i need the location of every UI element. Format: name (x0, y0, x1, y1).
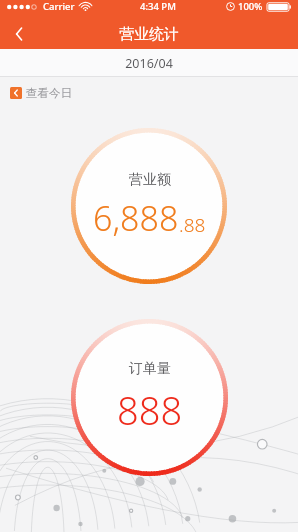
staticText: .88 (179, 212, 206, 238)
staticText: 888 (117, 384, 183, 436)
button[interactable]: 查看今日 (10, 86, 72, 100)
button[interactable]: 2016/04 (0, 49, 298, 77)
button[interactable]: 营业额 (71, 128, 227, 284)
staticText: 6,888 (93, 195, 179, 241)
button[interactable]: 订单量 (71, 319, 228, 476)
button[interactable]: Back (0, 19, 40, 49)
staticText: 4:34 PM (140, 0, 176, 13)
staticText: 订单量 (129, 360, 171, 378)
staticText: 营业统计 (119, 25, 179, 44)
staticText: 查看今日 (26, 86, 72, 100)
staticText: 2016/04 (125, 55, 173, 72)
staticText: 100% (238, 0, 263, 13)
staticText: Carrier (43, 0, 75, 13)
staticText: 营业额 (129, 171, 171, 189)
